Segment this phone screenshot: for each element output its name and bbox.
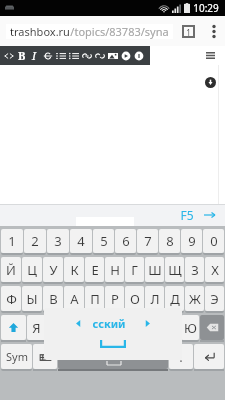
button[interactable]: 0 <box>203 229 224 253</box>
button[interactable]: Shift <box>1 315 26 340</box>
staticText: 1 <box>8 232 16 250</box>
staticText: Л <box>150 290 160 308</box>
button[interactable]: Ы <box>22 286 42 311</box>
staticText: Ц <box>27 261 37 279</box>
staticText: 7 <box>144 232 152 250</box>
button[interactable]: Я <box>27 315 46 340</box>
button[interactable]: F5 <box>175 207 199 223</box>
button[interactable]: Menu <box>199 46 221 65</box>
staticText: Я <box>32 319 41 337</box>
button[interactable]: Й <box>1 257 21 282</box>
staticText: 6 <box>122 232 130 250</box>
button[interactable]: Format <box>106 46 119 65</box>
button[interactable]: П <box>85 286 104 311</box>
button[interactable]: Format <box>2 46 15 65</box>
button[interactable]: Ш <box>145 257 164 282</box>
button[interactable]: I <box>28 46 41 65</box>
button[interactable]: З <box>185 257 204 282</box>
staticText: Sym <box>6 349 28 364</box>
button[interactable]: 2 <box>24 229 46 253</box>
button[interactable]: Sym <box>1 344 32 369</box>
button[interactable]: 5 <box>93 229 114 253</box>
staticText: F5 <box>180 207 194 223</box>
staticText: . <box>179 348 183 366</box>
button[interactable]: Ь <box>143 315 161 340</box>
button[interactable]: 3 <box>47 229 69 253</box>
button[interactable]: Format <box>54 46 67 65</box>
button[interactable]: 4 <box>70 229 92 253</box>
staticText: Р <box>111 290 119 308</box>
button[interactable]: Русский <box>58 344 168 369</box>
button[interactable]: У <box>43 257 63 282</box>
staticText: З <box>191 261 199 279</box>
button[interactable]: Д <box>165 286 184 311</box>
button[interactable]: Э <box>205 286 224 311</box>
staticText: /topics/83783/syna <box>70 24 169 39</box>
button[interactable]: Backspace <box>200 315 224 340</box>
staticText: В <box>49 290 58 308</box>
button[interactable]: Tabs <box>173 16 203 46</box>
staticText: Ь <box>148 319 156 337</box>
button[interactable]: И <box>105 315 123 340</box>
staticText: Х <box>211 261 219 279</box>
staticText: I <box>32 48 37 63</box>
staticText: К <box>70 261 79 279</box>
button[interactable]: Ф <box>1 286 21 311</box>
button[interactable]: Ж <box>185 286 204 311</box>
button[interactable]: Download <box>205 77 216 88</box>
button[interactable]: Ю <box>181 315 199 340</box>
button[interactable]: Н <box>105 257 124 282</box>
button[interactable]: Щ <box>165 257 184 282</box>
button[interactable]: Next <box>199 205 219 225</box>
button[interactable]: Format <box>67 46 80 65</box>
button[interactable]: Х <box>205 257 224 282</box>
staticText: Д <box>170 290 180 308</box>
button[interactable]: Format <box>119 46 132 65</box>
button[interactable]: 6 <box>115 229 136 253</box>
button[interactable]: К <box>64 257 84 282</box>
button[interactable]: С <box>67 315 85 340</box>
button[interactable]: М <box>86 315 104 340</box>
button[interactable]: Format <box>132 46 145 65</box>
staticText: 2 <box>31 232 39 250</box>
button[interactable]: Л <box>145 286 164 311</box>
button[interactable]: Е <box>85 257 104 282</box>
staticText: Е <box>91 261 99 279</box>
staticText: 4 <box>77 232 85 250</box>
button[interactable]: Г <box>125 257 144 282</box>
button[interactable]: Р <box>105 286 124 311</box>
staticText: 8 <box>166 232 174 250</box>
staticText: Ж <box>189 290 201 308</box>
button[interactable]: Format <box>93 46 106 65</box>
button[interactable]: B <box>15 46 28 65</box>
button[interactable]: . <box>169 344 193 369</box>
button[interactable]: 7 <box>137 229 158 253</box>
button[interactable]: Ц <box>22 257 42 282</box>
button[interactable]: More options <box>203 16 225 46</box>
staticText: Ф <box>6 290 17 308</box>
button[interactable]: Change keyboard <box>33 344 57 369</box>
button[interactable]: Format <box>80 46 93 65</box>
staticText: У <box>49 261 58 279</box>
staticText: 3 <box>54 232 62 250</box>
staticText: И <box>109 319 119 337</box>
button[interactable]: Format <box>41 46 54 65</box>
button[interactable]: А <box>64 286 84 311</box>
button[interactable]: 9 <box>181 229 202 253</box>
button[interactable]: сский <box>44 308 182 360</box>
button[interactable]: В <box>43 286 63 311</box>
staticText: О <box>130 290 140 308</box>
button[interactable]: 8 <box>159 229 180 253</box>
staticText: Н <box>110 261 120 279</box>
button[interactable]: О <box>125 286 144 311</box>
staticText: Ы <box>26 290 38 308</box>
staticText: сский <box>92 316 126 331</box>
button[interactable]: Enter <box>194 344 224 369</box>
button[interactable]: trashbox.ru <box>6 24 173 39</box>
button[interactable]: 1 <box>1 229 23 253</box>
button[interactable]: Т <box>124 315 142 340</box>
